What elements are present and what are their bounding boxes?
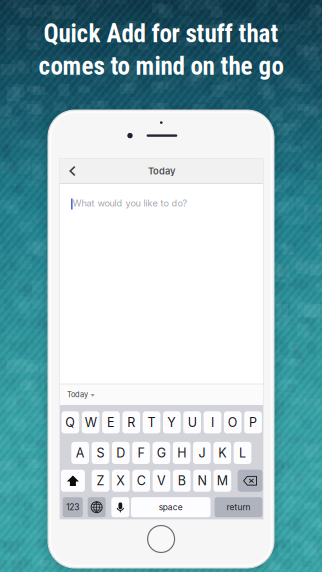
button[interactable]: G bbox=[152, 442, 170, 464]
button[interactable]: Next keyboard bbox=[88, 497, 106, 517]
staticText: Y bbox=[167, 415, 176, 430]
staticText: B bbox=[178, 473, 186, 488]
button[interactable]: Today bbox=[60, 384, 263, 405]
staticText: space bbox=[159, 502, 183, 512]
button[interactable]: return bbox=[215, 497, 262, 517]
staticText: T bbox=[147, 415, 155, 430]
button[interactable]: A bbox=[71, 442, 89, 464]
button[interactable]: space bbox=[131, 497, 210, 517]
button[interactable]: X bbox=[112, 470, 130, 492]
button[interactable]: B bbox=[173, 470, 191, 492]
button[interactable]: R bbox=[122, 411, 140, 433]
staticText: return bbox=[226, 502, 250, 512]
button[interactable]: Numbers bbox=[63, 497, 83, 517]
staticText: V bbox=[157, 473, 166, 488]
staticText: C bbox=[137, 473, 146, 488]
staticText: R bbox=[127, 415, 135, 430]
staticText: H bbox=[177, 445, 186, 461]
button[interactable]: J bbox=[193, 442, 211, 464]
staticText: I bbox=[211, 415, 214, 430]
staticText: O bbox=[228, 415, 238, 430]
staticText: J bbox=[198, 445, 205, 461]
button[interactable]: U bbox=[183, 411, 201, 433]
button[interactable]: Y bbox=[163, 411, 181, 433]
button[interactable]: Delete bbox=[238, 470, 263, 492]
staticText: Quick Add for stuff that bbox=[43, 19, 278, 48]
staticText: D bbox=[116, 445, 125, 461]
button[interactable]: Shift bbox=[61, 470, 85, 492]
staticText: 123 bbox=[66, 502, 79, 512]
button[interactable]: N bbox=[193, 470, 211, 492]
staticText: S bbox=[96, 445, 104, 461]
staticText: G bbox=[157, 445, 166, 461]
staticText: X bbox=[116, 473, 125, 488]
button[interactable]: T bbox=[143, 411, 160, 433]
staticText: N bbox=[197, 473, 206, 488]
staticText: comes to mind on the go bbox=[38, 51, 283, 81]
button[interactable]: I bbox=[204, 411, 221, 433]
staticText: Today bbox=[148, 165, 175, 177]
button[interactable]: Q bbox=[61, 411, 79, 433]
staticText: Q bbox=[65, 415, 75, 430]
button[interactable]: M bbox=[213, 470, 231, 492]
staticText: P bbox=[249, 415, 257, 430]
button[interactable]: P bbox=[244, 411, 262, 433]
staticText: F bbox=[137, 445, 144, 461]
button[interactable]: Back bbox=[60, 159, 84, 183]
button[interactable]: D bbox=[112, 442, 130, 464]
staticText: E bbox=[107, 415, 115, 430]
staticText: K bbox=[218, 445, 226, 461]
staticText: Z bbox=[96, 473, 104, 488]
button[interactable]: V bbox=[153, 470, 170, 492]
staticText: M bbox=[217, 473, 228, 488]
button[interactable]: L bbox=[234, 442, 251, 464]
button[interactable]: W bbox=[82, 411, 99, 433]
button[interactable]: S bbox=[92, 442, 109, 464]
staticText: What would you like to do? bbox=[73, 198, 188, 209]
button[interactable]: K bbox=[213, 442, 231, 464]
staticText: L bbox=[239, 445, 246, 461]
button[interactable]: F bbox=[132, 442, 150, 464]
button[interactable]: C bbox=[132, 470, 150, 492]
staticText: W bbox=[85, 415, 97, 430]
button[interactable]: Dictation bbox=[111, 497, 129, 517]
staticText: U bbox=[188, 415, 197, 430]
button[interactable]: E bbox=[102, 411, 120, 433]
staticText: A bbox=[76, 445, 85, 461]
button[interactable]: H bbox=[173, 442, 190, 464]
button[interactable]: O bbox=[224, 411, 242, 433]
button[interactable]: Z bbox=[92, 470, 109, 492]
staticText: Today bbox=[67, 390, 88, 399]
